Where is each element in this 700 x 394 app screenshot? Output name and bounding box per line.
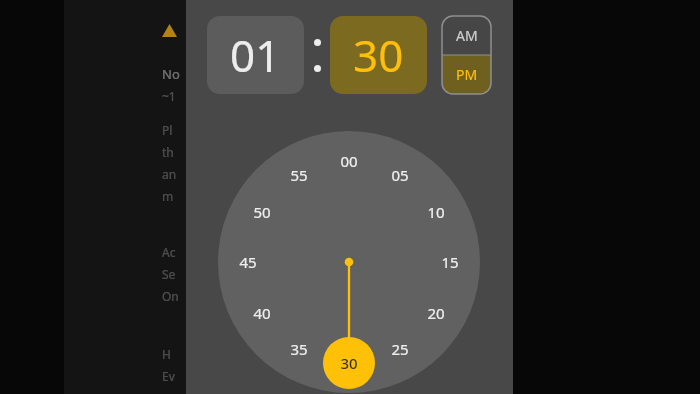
staticText: 10: [427, 202, 445, 222]
staticText: ~1: [162, 88, 176, 104]
staticText: 20: [427, 303, 445, 323]
staticText: 01: [230, 25, 281, 85]
button[interactable]: AM: [442, 16, 491, 55]
button[interactable]: 30: [328, 350, 370, 376]
button[interactable]: 05: [379, 162, 421, 188]
staticText: 15: [441, 252, 459, 272]
staticText: PM: [456, 65, 478, 84]
staticText: No: [162, 65, 180, 83]
staticText: On: [162, 288, 179, 304]
staticText: m: [162, 188, 174, 204]
button[interactable]: 25: [379, 336, 421, 362]
button[interactable]: 45: [227, 249, 269, 275]
button[interactable]: 15: [429, 249, 471, 275]
staticText: 30: [353, 25, 404, 85]
button[interactable]: 40: [241, 300, 283, 326]
staticText: 45: [239, 252, 257, 272]
staticText: 05: [391, 165, 409, 185]
staticText: 30: [340, 353, 358, 373]
staticText: H: [162, 346, 171, 362]
staticText: 00: [340, 151, 358, 171]
staticText: th: [162, 144, 174, 160]
staticText: an: [162, 166, 177, 182]
staticText: 40: [253, 303, 271, 323]
button[interactable]: 50: [241, 199, 283, 225]
button[interactable]: 01: [207, 16, 304, 94]
staticText: 25: [391, 339, 409, 359]
other: Warning: [162, 24, 177, 37]
staticText: AM: [456, 26, 478, 45]
button[interactable]: 35: [278, 336, 320, 362]
button[interactable]: 30: [330, 16, 427, 94]
button[interactable]: PM: [442, 55, 491, 94]
staticText: Ev: [162, 368, 175, 384]
button[interactable]: 55: [278, 162, 320, 188]
staticText: 35: [290, 339, 308, 359]
staticText: Ac: [162, 244, 176, 260]
staticText: 55: [290, 165, 308, 185]
staticText: Se: [162, 266, 176, 282]
staticText: 50: [253, 202, 271, 222]
button[interactable]: 20: [415, 300, 457, 326]
staticText: Pl: [162, 122, 173, 138]
button[interactable]: 00: [328, 148, 370, 174]
button[interactable]: 10: [415, 199, 457, 225]
